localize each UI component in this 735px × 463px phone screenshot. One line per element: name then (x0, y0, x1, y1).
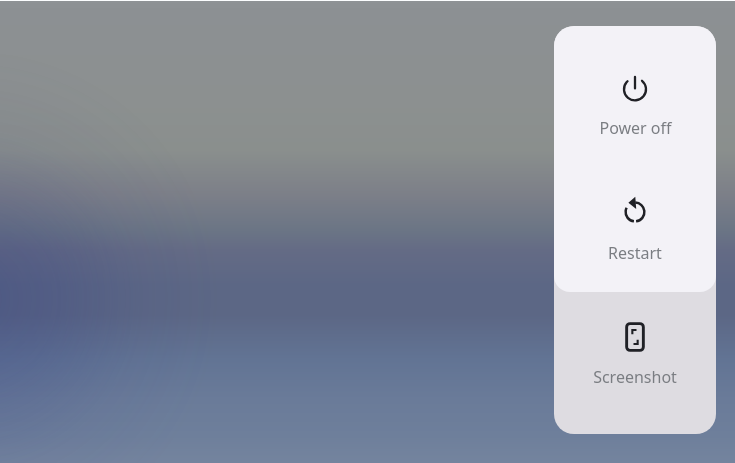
other: Screenshot (623, 321, 647, 353)
staticText: Power off (599, 117, 672, 139)
button[interactable]: Screenshot (554, 292, 716, 434)
staticText: Screenshot (593, 366, 677, 388)
other: Power off (620, 71, 650, 101)
other: Restart (621, 198, 649, 226)
button[interactable]: Restart (554, 159, 716, 292)
staticText: Restart (608, 242, 662, 264)
button[interactable]: Power off (554, 26, 716, 159)
